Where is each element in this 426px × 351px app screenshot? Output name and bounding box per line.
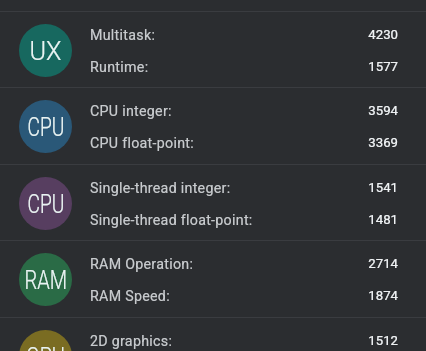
staticText: 1512 xyxy=(368,333,398,348)
staticText: Single-thread integer: xyxy=(90,180,368,197)
staticText: 1874 xyxy=(368,288,398,303)
staticText: CPU xyxy=(27,189,64,219)
staticText: CPU integer: xyxy=(90,103,368,120)
staticText: RAM xyxy=(24,265,67,295)
staticText: 2D graphics: xyxy=(90,333,368,350)
staticText: GPU xyxy=(26,342,65,351)
other: GPU xyxy=(19,330,72,351)
staticText: 1481 xyxy=(368,212,398,227)
staticText: Single-thread float-point: xyxy=(90,212,368,229)
other: UX xyxy=(19,24,72,77)
button[interactable]: CPU xyxy=(0,88,426,164)
staticText: CPU xyxy=(27,112,64,142)
staticText: 1577 xyxy=(368,59,398,74)
staticText: 4230 xyxy=(368,27,398,42)
button[interactable]: UX xyxy=(0,12,426,88)
staticText: 2714 xyxy=(368,256,398,271)
staticText: 3594 xyxy=(368,103,398,118)
staticText: Runtime: xyxy=(90,59,368,76)
button[interactable]: CPU xyxy=(0,165,426,241)
other: CPU xyxy=(19,100,72,153)
staticText: RAM Operation: xyxy=(90,256,368,273)
staticText: RAM Speed: xyxy=(90,288,368,305)
other: RAM xyxy=(19,253,72,306)
staticText: UX xyxy=(29,36,62,66)
button[interactable]: GPU xyxy=(0,318,426,351)
button[interactable]: RAM xyxy=(0,241,426,317)
staticText: Multitask: xyxy=(90,27,368,44)
staticText: CPU float-point: xyxy=(90,135,368,152)
staticText: 1541 xyxy=(368,180,398,195)
staticText: 3369 xyxy=(368,135,398,150)
other: CPU xyxy=(19,177,72,230)
